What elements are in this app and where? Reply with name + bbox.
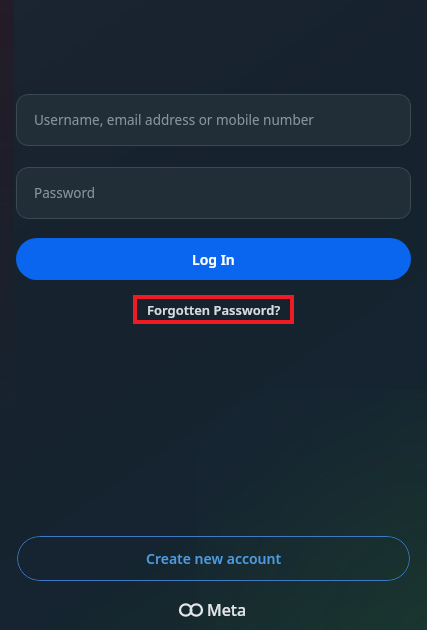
staticText: Username, email address or mobile number: [34, 111, 314, 129]
button[interactable]: Username, email address or mobile number: [16, 94, 411, 146]
button[interactable]: Password: [16, 167, 411, 219]
button[interactable]: Log In: [16, 238, 411, 280]
staticText: Log In: [192, 250, 235, 269]
staticText: Password: [34, 184, 96, 202]
button[interactable]: Create new account: [17, 536, 410, 581]
staticText: Forgotten Password?: [147, 301, 281, 319]
other: Meta: [180, 603, 202, 617]
staticText: Create new account: [146, 549, 282, 568]
staticText: Meta: [207, 599, 247, 621]
button[interactable]: Forgotten Password?: [133, 295, 294, 324]
